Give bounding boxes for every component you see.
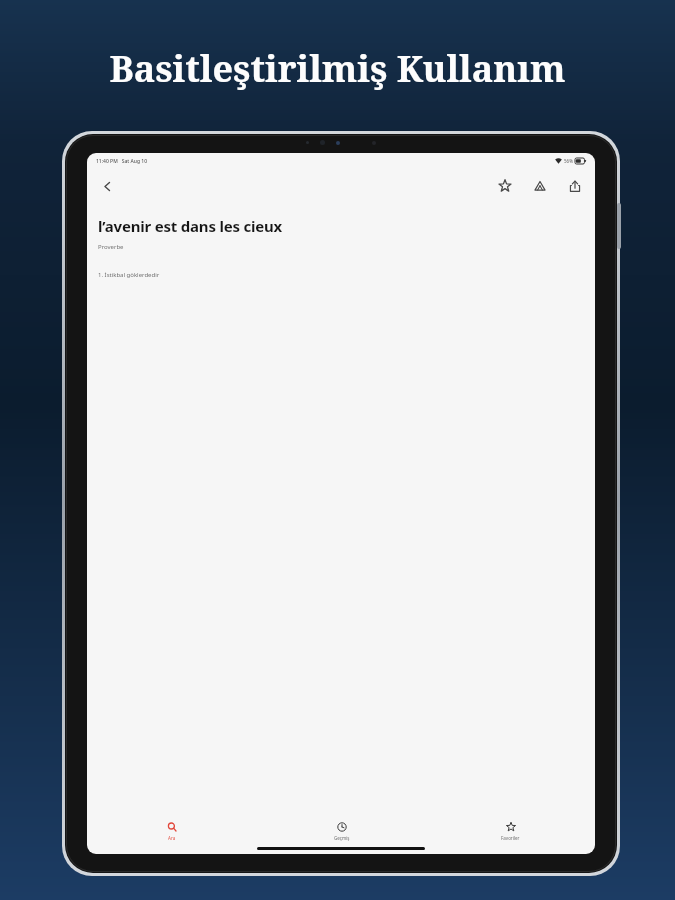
staticText: 56% xyxy=(564,158,573,164)
staticText: Proverbe xyxy=(98,243,124,251)
button[interactable]: Favorite xyxy=(493,174,517,198)
staticText: 11:40 PM Sat Aug 10 xyxy=(96,158,147,165)
staticText: Favoriler xyxy=(501,835,520,841)
button[interactable]: Share xyxy=(563,174,587,198)
button[interactable]: Save to Drive xyxy=(528,174,552,198)
button[interactable]: Favoriler xyxy=(426,814,595,854)
button[interactable]: Ara xyxy=(87,814,257,854)
staticText: Ara xyxy=(168,835,176,841)
button[interactable]: Back xyxy=(95,174,119,198)
staticText: l’avenir est dans les cieux xyxy=(98,216,283,236)
staticText: Geçmiş xyxy=(334,835,350,841)
button[interactable]: Geçmiş xyxy=(257,814,426,854)
staticText: Basitleştirilmiş Kullanım xyxy=(0,44,675,93)
staticText: 1. İstikbal göklerdedir xyxy=(98,271,160,279)
